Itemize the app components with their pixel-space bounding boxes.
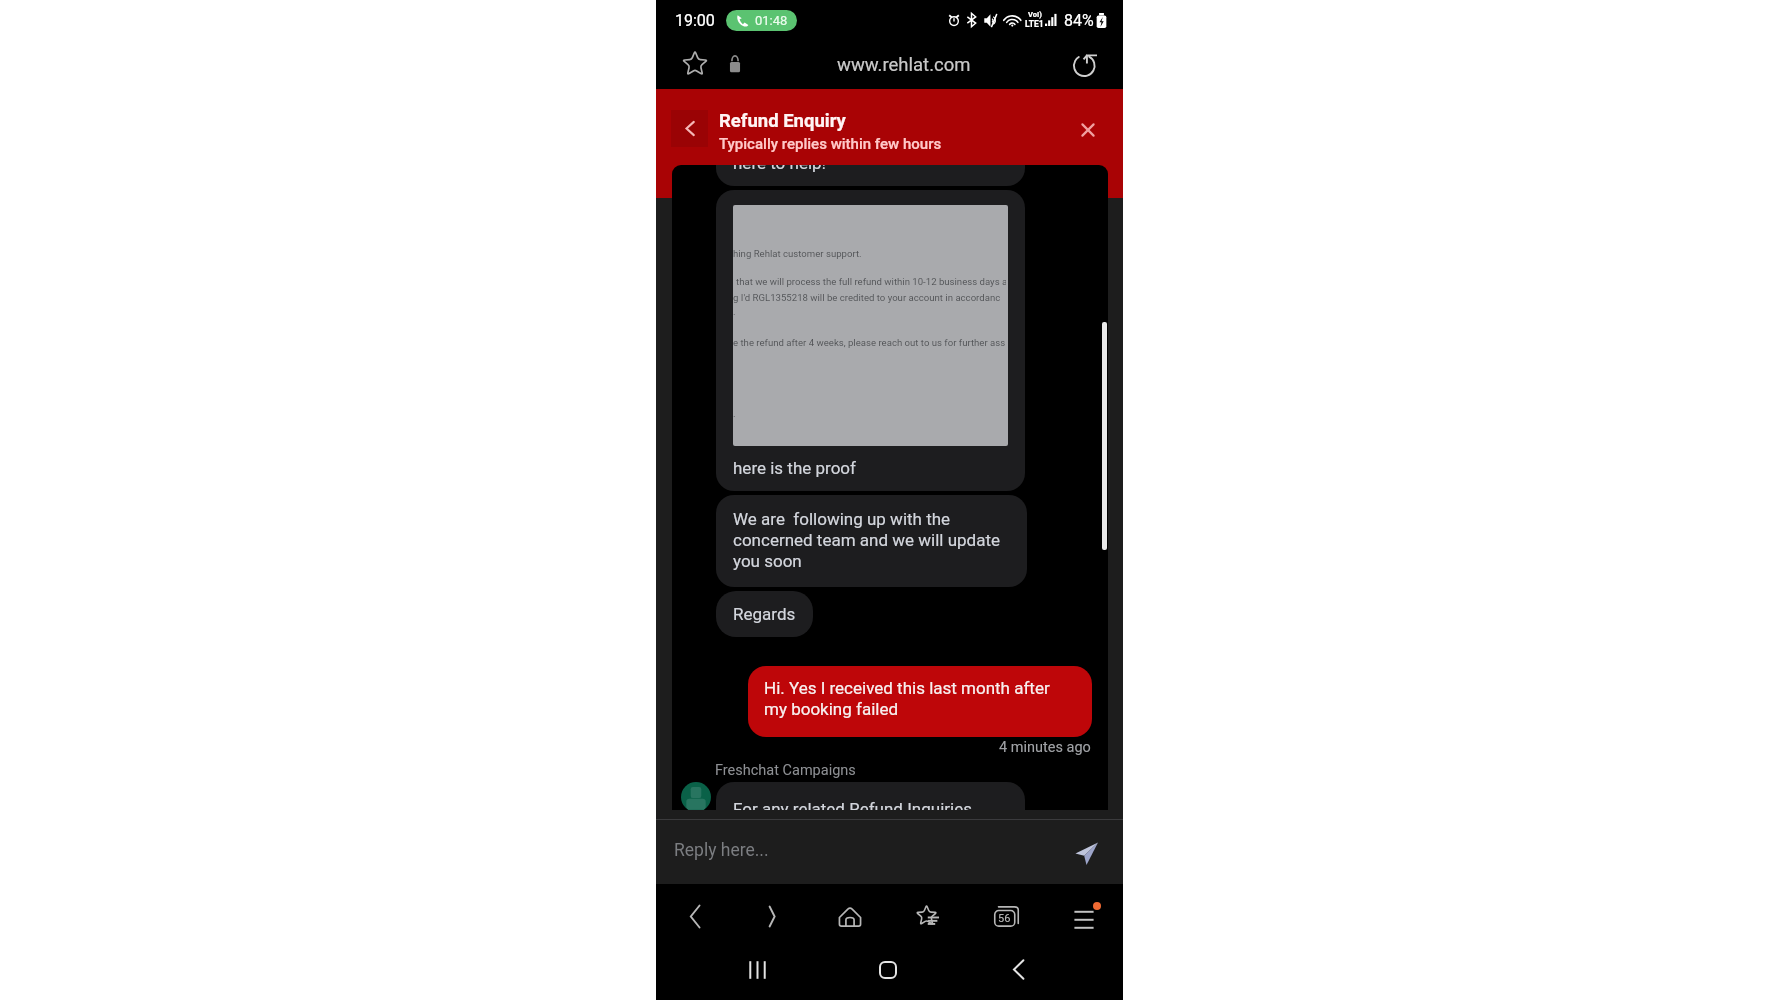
staticText: .: [733, 306, 736, 317]
button[interactable]: Bookmark: [656, 40, 726, 89]
button[interactable]: Home: [853, 945, 923, 1000]
staticText: Typically replies within few hours: [719, 135, 942, 153]
button[interactable]: Hi. Yes I received this last month after…: [748, 666, 1092, 737]
button[interactable]: Forward: [733, 888, 811, 945]
staticText: 84%: [1064, 11, 1094, 30]
button[interactable]: For any related Refund Inquiries: [716, 782, 1025, 810]
staticText: 19:00: [675, 11, 715, 30]
staticText: Hi. Yes I received this last month after…: [764, 678, 1076, 719]
button[interactable]: We are following up with the concerned t…: [716, 495, 1027, 587]
button[interactable]: Close: [1068, 110, 1108, 150]
staticText: 56: [998, 912, 1011, 925]
staticText: Reply here...: [674, 840, 769, 861]
button[interactable]: Recents: [722, 945, 792, 1000]
staticText: VoI): [1028, 10, 1042, 19]
staticText: LTE1: [1025, 19, 1044, 29]
button[interactable]: Send: [1067, 834, 1105, 872]
button[interactable]: Tabs: [967, 888, 1045, 945]
staticText: www.rehlat.com: [837, 54, 971, 76]
button[interactable]: Reload: [1046, 40, 1123, 89]
button[interactable]: Back: [983, 945, 1053, 1000]
button[interactable]: Back: [671, 110, 708, 147]
staticText: e the refund after 4 weeks, please reach…: [733, 337, 1006, 348]
staticText: I that we will process the full refund w…: [733, 276, 1006, 287]
staticText: For any related Refund Inquiries: [733, 799, 972, 810]
button[interactable]: here to help!: [716, 165, 1025, 186]
staticText: 4 minutes ago: [999, 739, 1091, 756]
button[interactable]: Regards: [716, 591, 813, 637]
button[interactable]: Bookmarks: [889, 888, 967, 945]
button[interactable]: Home: [811, 888, 889, 945]
staticText: Freshchat Campaigns: [715, 762, 856, 779]
button[interactable]: Site security: [726, 40, 756, 89]
staticText: here to help!: [733, 165, 826, 173]
staticText: 01:48: [755, 13, 788, 28]
staticText: .: [733, 408, 736, 419]
staticText: Regards: [733, 604, 796, 624]
staticText: Refund Enquiry: [719, 110, 846, 132]
staticText: g I'd RGL1355218 will be credited to you…: [733, 292, 1001, 303]
staticText: hing Rehlat customer support.: [733, 248, 862, 259]
staticText: here is the proof: [733, 458, 856, 478]
staticText: We are following up with the concerned t…: [733, 509, 1013, 571]
button[interactable]: Menu: [1045, 888, 1123, 945]
button[interactable]: Back: [656, 888, 733, 945]
button[interactable]: hing Rehlat customer support.: [716, 190, 1025, 491]
